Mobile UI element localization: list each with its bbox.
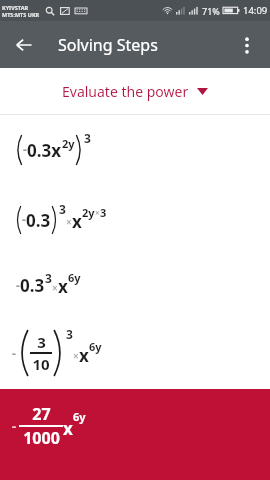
button[interactable]: -: [0, 254, 270, 316]
staticText: Evaluate the power: [62, 82, 189, 101]
staticText: 3: [100, 205, 107, 220]
button[interactable]: More options: [231, 29, 263, 61]
staticText: 27: [32, 403, 51, 425]
staticText: ×: [52, 281, 58, 295]
staticText: 14:09: [243, 4, 268, 17]
staticText: 71%: [202, 5, 220, 17]
staticText: -: [12, 345, 16, 361]
staticText: 3: [84, 130, 91, 146]
staticText: ×: [66, 215, 72, 229]
staticText: -: [22, 211, 26, 227]
button[interactable]: -: [0, 115, 270, 185]
staticText: KYIVSTAR: [2, 4, 29, 11]
button[interactable]: -: [0, 316, 270, 389]
staticText: MTS:MTS UKR: [2, 11, 40, 18]
staticText: 2y: [82, 205, 95, 220]
staticText: x: [58, 275, 68, 298]
staticText: 0.3: [26, 209, 51, 232]
button[interactable]: -: [0, 389, 270, 480]
staticText: 3: [59, 201, 66, 217]
staticText: 1000: [23, 427, 60, 449]
staticText: 0.3: [20, 274, 45, 297]
staticText: ×: [73, 349, 79, 363]
staticText: 3: [66, 326, 73, 342]
staticText: x: [72, 210, 82, 233]
staticText: ×: [95, 207, 100, 218]
staticText: 6y: [68, 270, 81, 285]
staticText: -: [23, 141, 27, 157]
staticText: 3: [45, 270, 52, 286]
button[interactable]: Evaluate the power: [0, 68, 270, 114]
staticText: 10: [32, 354, 50, 374]
button[interactable]: Back: [8, 29, 40, 61]
staticText: 2y: [62, 136, 75, 151]
staticText: Solving Steps: [58, 34, 158, 56]
staticText: -: [12, 417, 17, 435]
staticText: x: [79, 344, 89, 367]
button[interactable]: -: [0, 185, 270, 254]
staticText: 3: [37, 332, 46, 352]
staticText: 0.3x: [27, 139, 62, 162]
staticText: -: [16, 277, 20, 293]
staticText: 6y: [73, 409, 86, 424]
staticText: x: [63, 417, 73, 440]
staticText: 6y: [89, 339, 102, 354]
